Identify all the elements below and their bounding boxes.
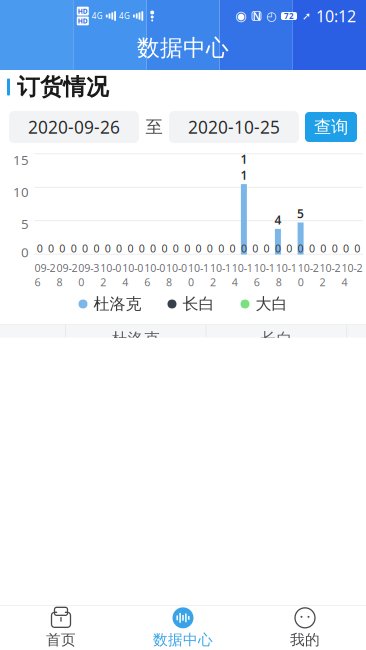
staticText: 0 xyxy=(275,241,281,255)
button[interactable]: 查询 xyxy=(305,112,357,142)
staticText: 10 xyxy=(13,183,29,201)
staticText: 10-12 xyxy=(210,261,231,289)
staticText: 72 xyxy=(284,11,294,21)
staticText: N xyxy=(252,9,260,23)
staticText: 我的 xyxy=(290,631,320,649)
staticText: 10-08 xyxy=(166,261,187,289)
staticText: 2020-10-25 xyxy=(188,115,280,138)
staticText: 数据中心 xyxy=(153,631,213,649)
staticText: 大白 xyxy=(255,294,287,314)
staticText: 首页 xyxy=(46,631,76,649)
staticText: 10-16 xyxy=(254,261,275,289)
staticText: 0 xyxy=(21,243,29,261)
staticText: HD xyxy=(78,16,88,25)
staticText: 10:12 xyxy=(316,5,356,27)
staticText: 0 xyxy=(139,241,145,255)
staticText: 11 xyxy=(240,151,247,183)
staticText: 长白 xyxy=(260,329,292,349)
staticText: 10-02 xyxy=(100,261,121,289)
staticText: 长白 xyxy=(182,294,214,314)
button[interactable]: 2020-09-26 xyxy=(9,111,139,143)
staticText: 0 xyxy=(173,241,179,255)
staticText: 09-26 xyxy=(34,261,55,289)
staticText: 0 xyxy=(195,241,201,255)
staticText: 0 xyxy=(298,241,304,255)
staticText: 0 xyxy=(343,241,349,255)
staticText: 10-03 xyxy=(10,586,51,607)
staticText: 0 xyxy=(48,241,54,255)
staticText: 查询 xyxy=(314,116,348,138)
staticText: 0 xyxy=(150,241,156,255)
staticText: 10-06 xyxy=(144,261,165,289)
staticText: ◉ xyxy=(235,8,247,23)
button[interactable]: 首页 xyxy=(0,606,122,650)
staticText: 杜洛克 xyxy=(93,294,141,314)
staticText: 09-28 xyxy=(56,261,77,289)
staticText: 0 xyxy=(252,241,258,255)
staticText: 4 xyxy=(274,212,281,228)
staticText: 0 xyxy=(320,241,326,255)
button[interactable]: 数据中心 xyxy=(122,606,244,650)
staticText: 10-04 xyxy=(122,261,143,289)
staticText: 0 xyxy=(354,241,360,255)
staticText: 0 xyxy=(207,241,213,255)
staticText: 0 xyxy=(37,241,43,255)
staticText: ◴ xyxy=(266,9,276,23)
button[interactable]: 2020-10-25 xyxy=(169,111,299,143)
staticText: 0 xyxy=(229,241,235,255)
staticText: HD xyxy=(78,7,88,15)
staticText: 杜洛克 xyxy=(112,329,160,349)
staticText: 5 xyxy=(297,206,304,221)
button[interactable]: 我的 xyxy=(244,606,366,650)
staticText: 0 xyxy=(184,241,190,255)
staticText: 5 xyxy=(21,215,29,233)
staticText: 2020-09-26 xyxy=(28,115,120,138)
staticText: 至 xyxy=(145,116,162,138)
staticText: 0 xyxy=(105,241,111,255)
staticText: 订货情况 xyxy=(17,73,109,101)
staticText: 0 xyxy=(82,241,88,255)
staticText: 0 xyxy=(241,241,247,255)
staticText: 0 xyxy=(116,241,122,255)
staticText: ➚ xyxy=(302,10,311,22)
staticText: 10-14 xyxy=(232,261,253,289)
staticText: 0 xyxy=(332,241,338,255)
staticText: 15 xyxy=(13,151,29,169)
staticText: 0 xyxy=(71,241,77,255)
staticText: 10-24 xyxy=(341,261,362,289)
staticText: 0 xyxy=(286,241,292,255)
staticText: 0 xyxy=(309,241,315,255)
staticText: 数据中心 xyxy=(137,34,229,62)
staticText: 10-18 xyxy=(276,261,297,289)
staticText: 09-30 xyxy=(78,261,99,289)
staticText: 4G xyxy=(92,11,103,21)
staticText: 0 xyxy=(127,241,133,255)
staticText: 10-10 xyxy=(188,261,209,289)
staticText: 4G xyxy=(119,11,130,21)
staticText: 0 xyxy=(59,241,65,255)
staticText: 0 xyxy=(161,241,167,255)
staticText: 0 xyxy=(93,241,99,255)
staticText: 0 xyxy=(218,241,224,255)
staticText: 0 xyxy=(264,241,270,255)
staticText: 10-20 xyxy=(298,261,319,289)
staticText: 10-22 xyxy=(320,261,341,289)
